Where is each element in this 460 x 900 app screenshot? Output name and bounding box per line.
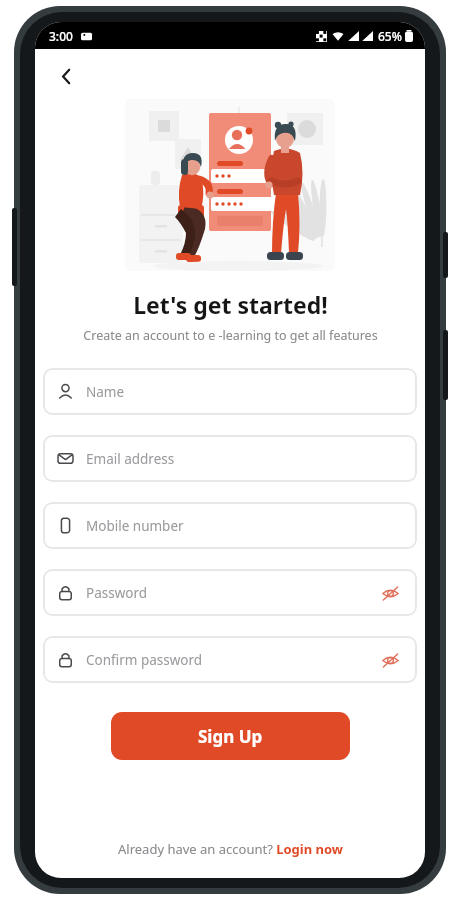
staticText: 65% [378, 28, 402, 44]
staticText: Already have an account? Login now [118, 840, 343, 858]
button[interactable]: Name [43, 368, 417, 415]
staticText: Confirm password [86, 651, 203, 669]
staticText: Create an account to e -learning to get … [83, 327, 378, 344]
button[interactable]: Already have an account? Login now [106, 834, 355, 864]
button[interactable]: Password [43, 569, 417, 616]
staticText: Let's get started! [133, 289, 328, 320]
staticText: Password [86, 584, 148, 602]
staticText: Mobile number [86, 517, 184, 535]
button[interactable]: Email address [43, 435, 417, 482]
button[interactable]: Mobile number [43, 502, 417, 549]
button[interactable]: Toggle password visibility [377, 647, 403, 673]
staticText: 3:00 [49, 28, 73, 44]
staticText: Sign Up [198, 725, 263, 748]
staticText: Email address [86, 450, 175, 468]
button[interactable]: Sign Up [111, 712, 350, 760]
staticText: Name [86, 383, 125, 401]
button[interactable]: Back [45, 55, 87, 97]
button[interactable]: Confirm password [43, 636, 417, 683]
button[interactable]: Toggle password visibility [377, 580, 403, 606]
